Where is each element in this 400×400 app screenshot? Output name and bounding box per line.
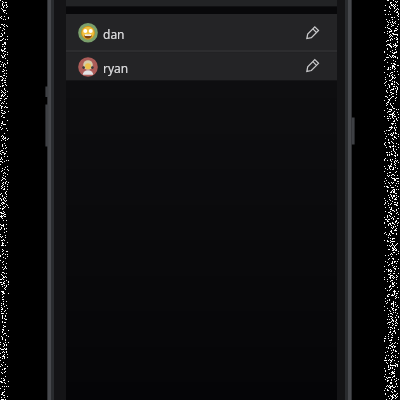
button[interactable] (66, 52, 337, 80)
button[interactable] (300, 22, 324, 46)
staticText: ryan (103, 60, 129, 76)
button[interactable] (300, 55, 324, 79)
staticText: dan (103, 26, 125, 42)
button[interactable] (66, 14, 337, 49)
